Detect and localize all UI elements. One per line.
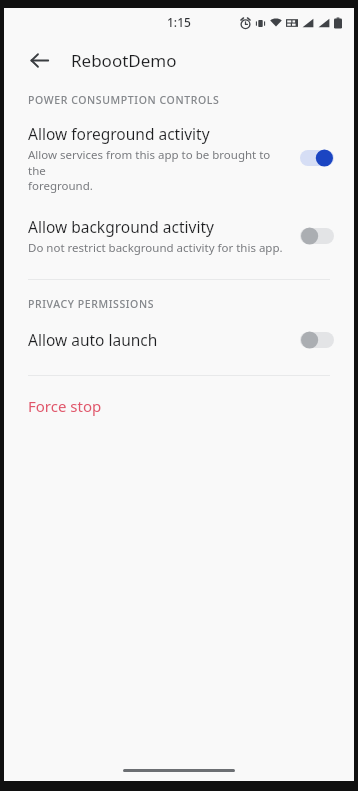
button[interactable]: Off	[300, 330, 334, 350]
staticText: Force stop	[28, 396, 102, 416]
staticText: Allow foreground activity	[28, 123, 210, 144]
button[interactable]: Allow background activity	[4, 213, 354, 259]
staticText: PRIVACY PERMISSIONS	[28, 297, 155, 311]
button[interactable]: Back	[22, 43, 56, 77]
button[interactable]: Force stop	[4, 392, 354, 420]
staticText: Allow background activity	[28, 216, 214, 237]
staticText: Allow auto launch	[28, 329, 158, 350]
staticText: 1:15	[167, 14, 191, 30]
staticText: POWER CONSUMPTION CONTROLS	[28, 93, 220, 107]
staticText: RebootDemo	[71, 49, 177, 72]
button[interactable]: Allow auto launch	[4, 326, 354, 353]
button[interactable]: Allow foreground activity	[4, 120, 354, 196]
button[interactable]: On	[300, 148, 334, 168]
button[interactable]: Off	[300, 226, 334, 246]
staticText: Allow services from this app to be broug…	[28, 147, 290, 193]
staticText: Do not restrict background activity for …	[28, 240, 283, 256]
